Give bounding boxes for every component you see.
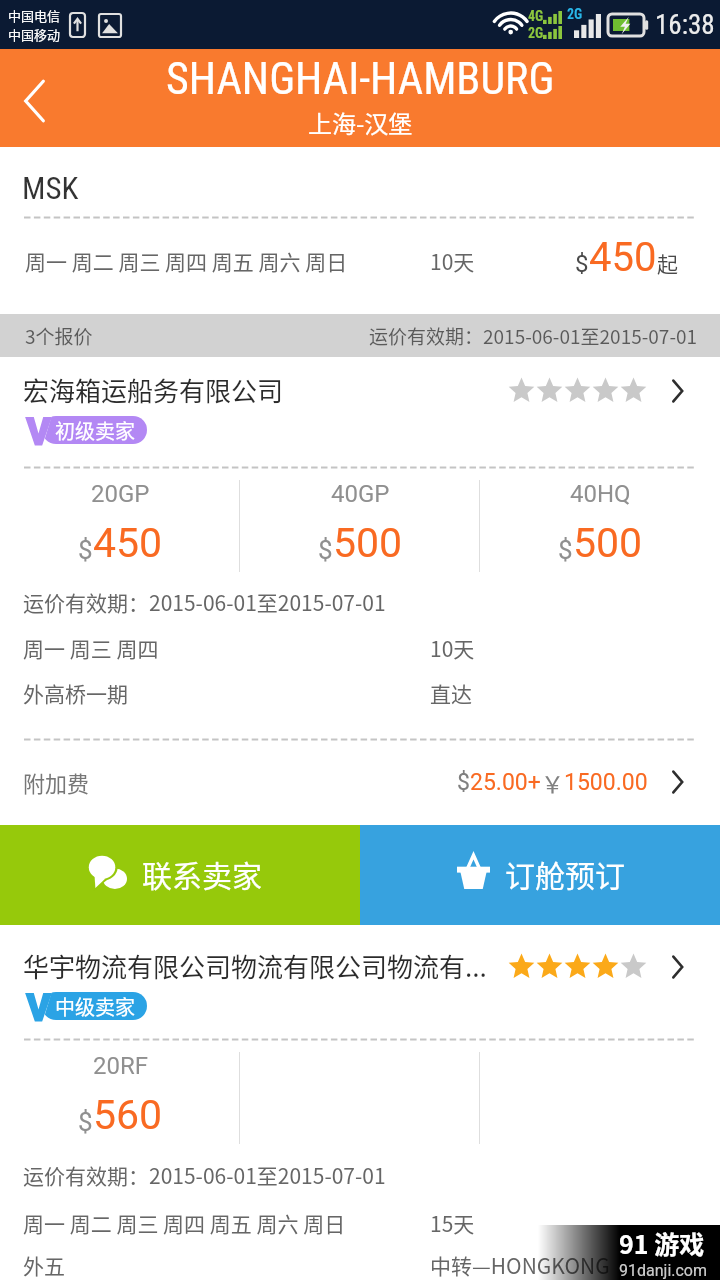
staticText: 初级卖家	[55, 416, 135, 444]
staticText: 500	[573, 519, 643, 567]
staticText: 20GP	[91, 480, 150, 508]
staticText: 20RF	[93, 1052, 149, 1080]
staticText: 直达	[430, 678, 472, 708]
staticText: 订舱预订	[505, 852, 625, 895]
staticText: $	[575, 250, 589, 278]
button[interactable]: 华宇物流有限公司物流有限公司物流有...	[0, 942, 720, 1032]
button[interactable]: 宏海箱运船务有限公司	[0, 366, 720, 456]
staticText: 40GP	[331, 480, 390, 508]
staticText: $	[457, 769, 470, 796]
staticText: 560	[93, 1091, 163, 1139]
staticText: $	[318, 535, 333, 565]
staticText: MSK	[22, 170, 79, 206]
staticText: 宏海箱运船务有限公司	[23, 371, 284, 409]
button[interactable]: Back	[0, 65, 66, 131]
staticText: 中级卖家	[55, 992, 135, 1020]
staticText: 3个报价	[25, 322, 93, 350]
staticText: $	[558, 535, 573, 565]
staticText: 10天	[430, 633, 475, 663]
staticText: $	[78, 535, 93, 565]
staticText: 联系卖家	[142, 852, 262, 895]
staticText: 2G	[567, 6, 583, 22]
staticText: 91 游戏	[619, 1225, 705, 1261]
staticText: 2G	[528, 25, 544, 41]
staticText: 450	[589, 234, 657, 281]
staticText: 起	[657, 248, 678, 278]
button[interactable]: 附加费	[0, 739, 720, 825]
staticText: 40HQ	[570, 480, 631, 508]
staticText: 1500.00	[564, 769, 648, 796]
staticText: 附加费	[23, 766, 90, 798]
staticText: 运价有效期：2015-06-01至2015-07-01	[23, 1160, 386, 1190]
staticText: $	[78, 1107, 93, 1137]
staticText: 450	[93, 519, 163, 567]
staticText: 10天	[430, 246, 475, 276]
staticText: 华宇物流有限公司物流有限公司物流有...	[23, 947, 487, 985]
staticText: 外五	[23, 1250, 65, 1280]
staticText: 500	[333, 519, 403, 567]
staticText: 中国移动	[8, 25, 61, 44]
button[interactable]: 联系卖家	[0, 825, 360, 925]
staticText: 周一 周二 周三 周四 周五 周六 周日	[25, 246, 348, 276]
staticText: 25.00+	[470, 769, 541, 796]
staticText: 中国电信	[8, 6, 61, 25]
staticText: 15天	[430, 1208, 475, 1238]
button[interactable]: 订舱预订	[360, 825, 720, 925]
staticText: 中转—HONGKONG	[430, 1250, 610, 1280]
staticText: ￥	[541, 766, 564, 799]
staticText: 91danji.com	[619, 1261, 708, 1280]
staticText: 周一 周二 周三 周四 周五 周六 周日	[23, 1208, 346, 1238]
staticText: SHANGHAI-HAMBURG	[166, 53, 555, 105]
staticText: 16:38	[655, 9, 715, 41]
staticText: 运价有效期：2015-06-01至2015-07-01	[369, 322, 698, 350]
staticText: 外高桥一期	[23, 678, 128, 708]
staticText: 4G	[528, 8, 544, 24]
staticText: 上海-汉堡	[308, 105, 413, 140]
staticText: 运价有效期：2015-06-01至2015-07-01	[23, 587, 386, 617]
staticText: 周一 周三 周四	[23, 633, 159, 663]
